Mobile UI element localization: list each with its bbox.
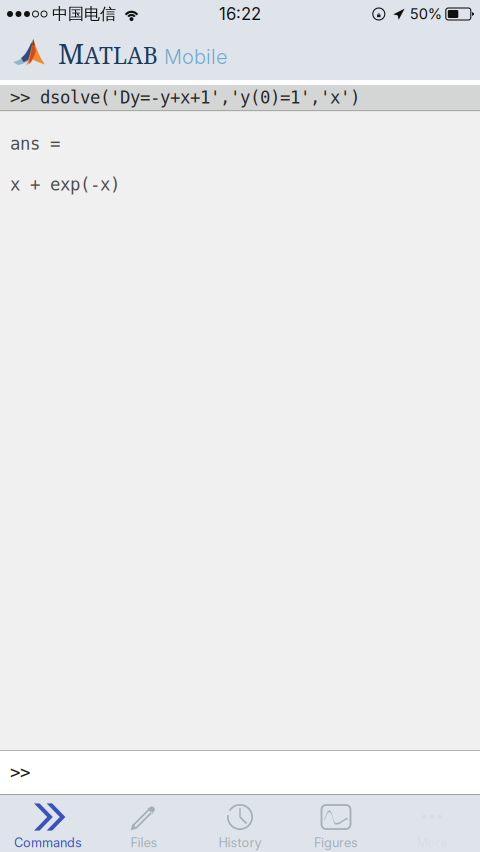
button[interactable]: Commands [0, 795, 96, 852]
staticText: ans = [10, 134, 60, 154]
staticText: >> [10, 763, 30, 782]
button[interactable]: Files [96, 795, 192, 852]
staticText: x + exp(-x) [10, 175, 120, 194]
button[interactable]: History [192, 795, 288, 852]
staticText: Files [130, 835, 157, 850]
staticText: 16:22 [219, 4, 261, 24]
staticText: Figures [314, 835, 358, 850]
staticText: 50% [410, 5, 442, 23]
staticText: Mobile [164, 45, 228, 69]
button[interactable]: >> [0, 751, 480, 794]
button[interactable]: Figures [288, 795, 384, 852]
staticText: Commands [14, 835, 82, 850]
staticText: 中国电信 [52, 4, 116, 24]
staticText: History [218, 835, 261, 850]
staticText: M [58, 34, 84, 72]
staticText: >> dsolve('Dy=-y+x+1','y(0)=1','x') [10, 88, 360, 107]
staticText: ATLAB [84, 40, 158, 71]
